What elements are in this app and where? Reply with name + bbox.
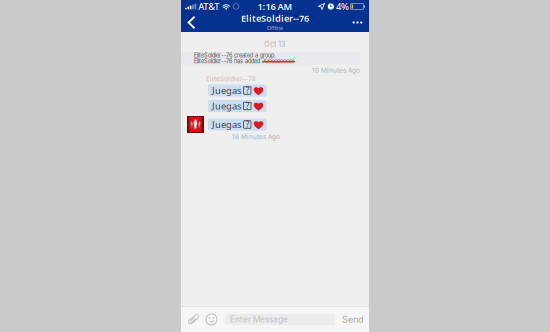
button[interactable]: Emoji (202, 309, 221, 330)
staticText: 16 Minutes Ago (232, 133, 280, 141)
button[interactable]: Juegas (208, 84, 266, 96)
button[interactable]: Send (335, 308, 369, 331)
staticText: Send (342, 314, 364, 325)
staticText: ? (246, 101, 249, 111)
staticText: EliteSoldier--76 (206, 75, 256, 83)
staticText: Offline (267, 24, 283, 31)
staticText: AT&T (198, 0, 219, 13)
button[interactable]: Back (181, 13, 204, 31)
staticText: EliteSoldier--76 created a group. (194, 52, 276, 59)
staticText: Juegas (212, 118, 241, 131)
staticText: Oct 13 (264, 39, 286, 48)
staticText: Juegas (212, 100, 241, 112)
staticText: 4% (336, 0, 349, 13)
staticText: ? (246, 85, 249, 96)
button[interactable]: More options (344, 16, 369, 29)
staticText: Xxxxxxxxxx (263, 58, 294, 65)
staticText: EliteSoldier--76 has added (194, 58, 260, 65)
staticText: Juegas (212, 84, 241, 97)
staticText: 1:16 AM (257, 0, 292, 13)
staticText: 16 Minutes Ago (312, 67, 360, 74)
button[interactable]: Attach file (181, 309, 202, 330)
staticText: ? (246, 119, 249, 130)
button[interactable]: Enter Message (221, 314, 335, 325)
staticText: Enter Message (230, 314, 288, 324)
staticText: EliteSoldier--76 (241, 12, 309, 24)
button[interactable]: Juegas (208, 100, 266, 112)
button[interactable]: Juegas (208, 118, 266, 130)
